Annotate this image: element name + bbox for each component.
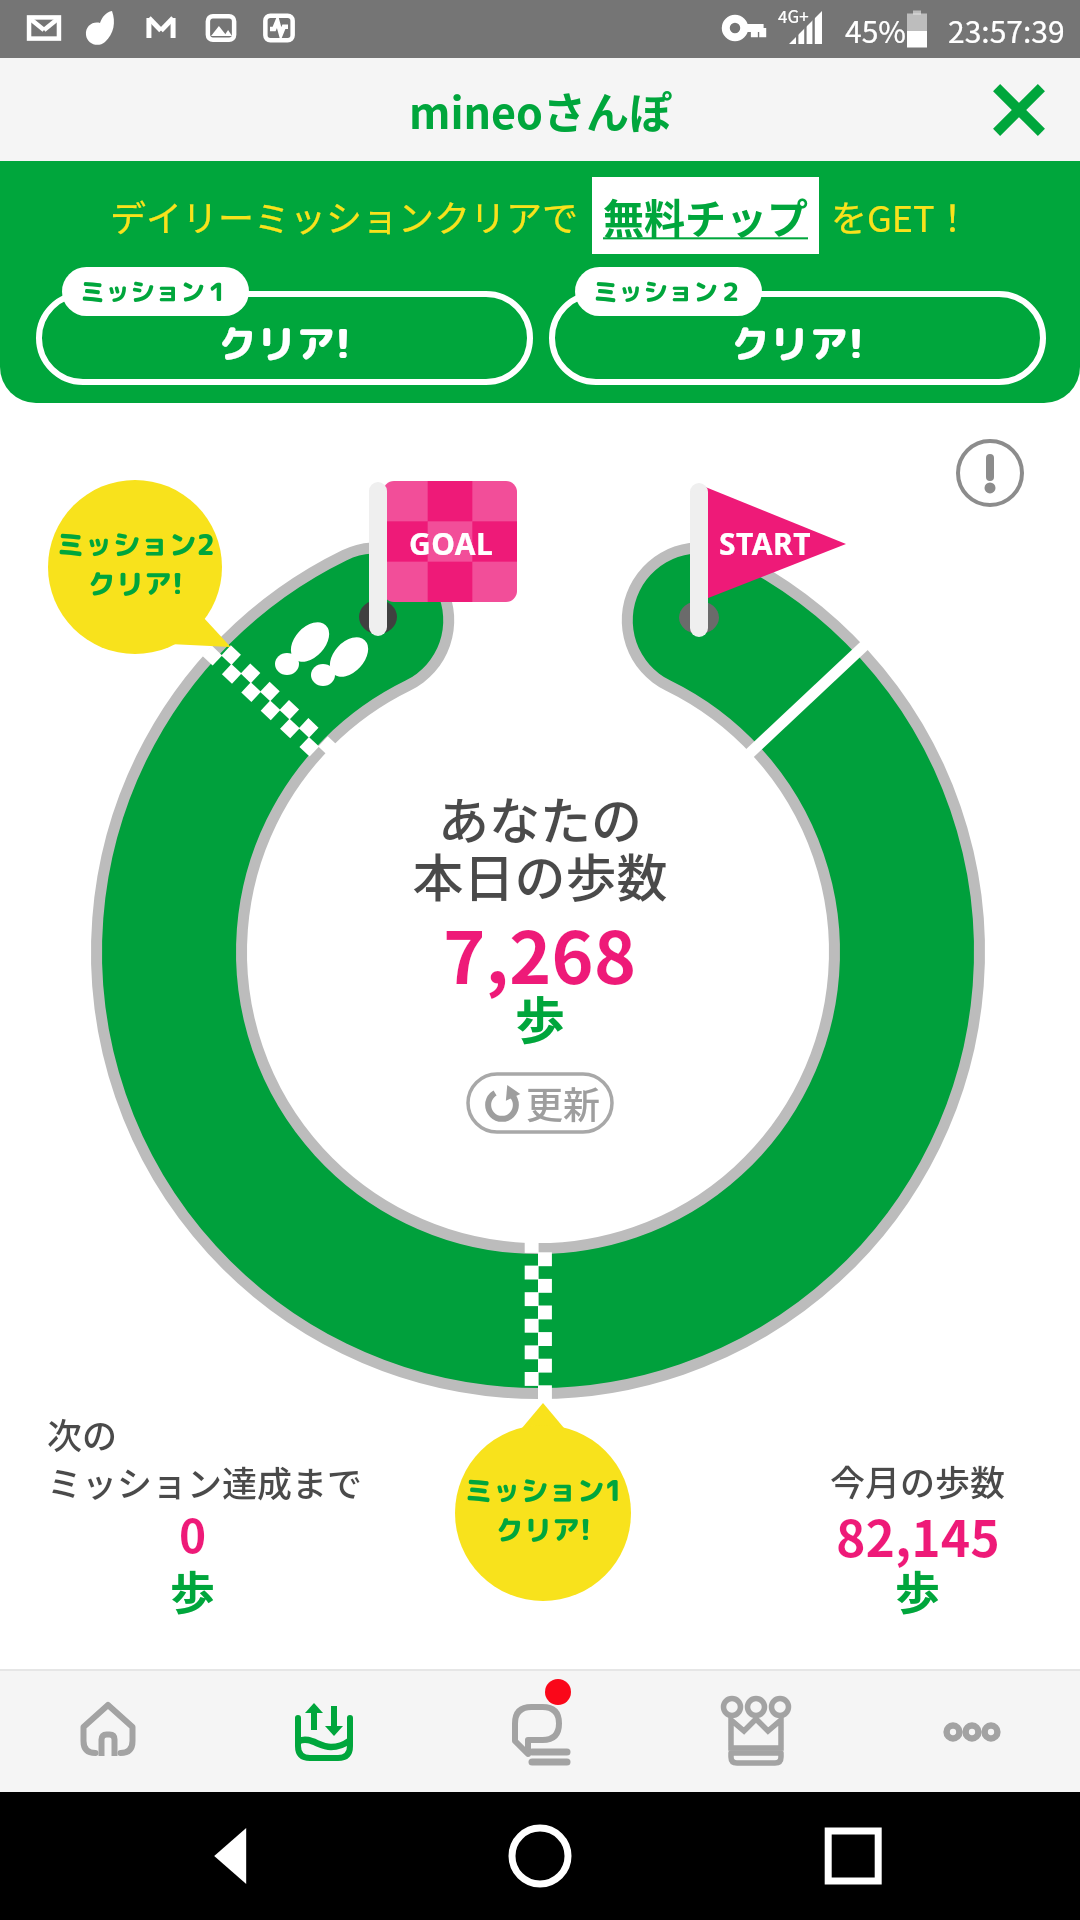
staticText: デイリーミッションクリアで <box>110 190 579 242</box>
staticText: 更新 <box>526 1076 600 1130</box>
button[interactable]: Ranking <box>648 1671 864 1792</box>
button[interactable]: Close <box>980 71 1058 149</box>
button[interactable]: クリア! <box>36 267 533 385</box>
staticText: あなたの 本日の歩数 <box>412 781 668 911</box>
staticText: 4G+ <box>778 3 809 28</box>
button[interactable]: クリア! <box>549 267 1046 385</box>
staticText: 次の ミッション達成まで <box>47 1408 363 1507</box>
button[interactable]: Community <box>432 1671 648 1792</box>
staticText: 歩 <box>515 981 565 1053</box>
staticText: 7,268 <box>443 900 637 1004</box>
staticText: ミッション１ <box>80 274 231 309</box>
staticText: 0 <box>179 1500 207 1567</box>
staticText: 今月の歩数 <box>830 1455 1006 1506</box>
staticText: START <box>719 523 811 564</box>
staticText: クリア! <box>218 316 351 370</box>
staticText: クリア! <box>731 316 864 370</box>
staticText: 歩 <box>895 1558 941 1623</box>
staticText: ミッション２ <box>593 274 744 309</box>
staticText: をGET！ <box>831 190 971 242</box>
staticText: ミッション2 クリア! <box>56 525 215 603</box>
staticText: ミッション1 クリア! <box>464 1471 623 1549</box>
button[interactable]: Steps <box>216 1671 432 1792</box>
button[interactable]: Information <box>956 439 1024 507</box>
staticText: 無料チップ <box>603 186 808 245</box>
staticText: mineoさんぽ <box>409 79 672 141</box>
staticText: GOAL <box>409 523 494 564</box>
button[interactable]: 更新 <box>466 1072 614 1134</box>
button[interactable]: More <box>864 1671 1080 1792</box>
staticText: 82,145 <box>836 1499 1000 1571</box>
staticText: 歩 <box>170 1558 216 1623</box>
button[interactable]: Home <box>0 1671 216 1792</box>
staticText: 23:57:39 <box>948 8 1065 51</box>
staticText: 45% <box>845 8 906 51</box>
